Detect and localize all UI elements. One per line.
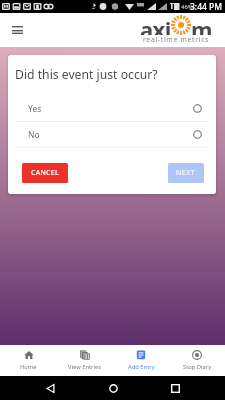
button[interactable]: No: [8, 122, 216, 147]
staticText: CANCEL: [31, 168, 60, 178]
staticText: Add Entry: [128, 363, 155, 371]
button[interactable]: CANCEL: [22, 163, 68, 183]
staticText: 46%: [181, 3, 193, 11]
staticText: View Entries: [68, 363, 102, 371]
button[interactable]: Add Entry: [113, 345, 169, 376]
button[interactable]: Home: [102, 377, 124, 399]
button[interactable]: NEXT: [168, 163, 204, 183]
button[interactable]: Open navigation menu: [5, 18, 29, 42]
staticText: NEXT: [176, 168, 196, 178]
staticText: No: [28, 129, 40, 141]
button[interactable]: View Entries: [57, 345, 113, 376]
staticText: Yes: [28, 103, 42, 115]
staticText: 3:44 PM: [190, 1, 223, 13]
button[interactable]: Yes: [8, 96, 216, 121]
button[interactable]: Home: [0, 345, 57, 376]
staticText: m: [191, 14, 212, 35]
staticText: real-time metrics: [143, 35, 210, 44]
staticText: axi: [140, 14, 171, 35]
button[interactable]: Back: [39, 377, 61, 399]
staticText: Did this event just occur?: [15, 66, 158, 83]
staticText: Home: [20, 363, 37, 371]
button[interactable]: Stop Diary: [169, 345, 225, 376]
button[interactable]: Recent apps: [164, 377, 186, 399]
staticText: Stop Diary: [183, 363, 212, 371]
